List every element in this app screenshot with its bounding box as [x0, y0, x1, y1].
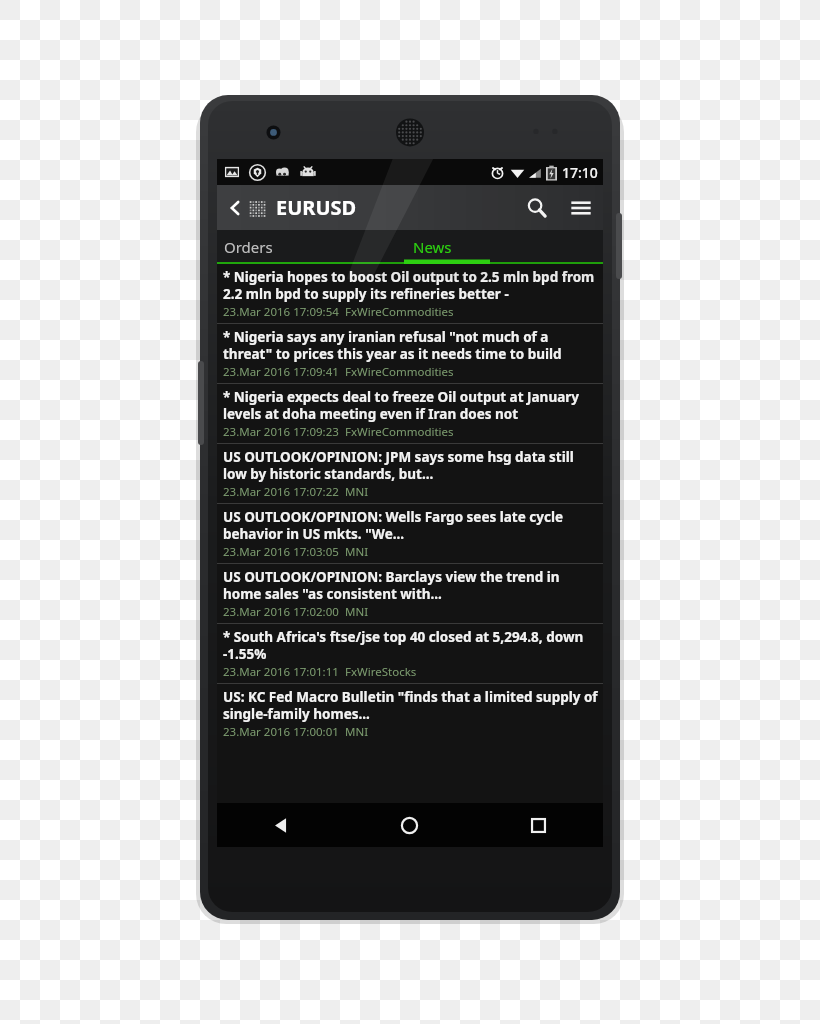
staticText: 23.Mar 2016 17:00:01 [223, 724, 339, 740]
button[interactable]: * South Africa's ftse/jse top 40 closed … [217, 624, 603, 683]
staticText: * South Africa's ftse/jse top 40 closed … [223, 628, 598, 663]
button[interactable]: * Nigeria hopes to boost Oil output to 2… [217, 264, 603, 323]
staticText: US OUTLOOK/OPINION: Barclays view the tr… [223, 568, 598, 603]
button[interactable]: Recents [474, 803, 603, 847]
button[interactable]: * Nigeria says any iranian refusal "not … [217, 324, 603, 383]
staticText: 23.Mar 2016 17:03:05 [223, 544, 339, 560]
staticText: MNI [345, 484, 369, 500]
staticText: * Nigeria hopes to boost Oil output to 2… [223, 268, 598, 303]
button[interactable]: Orders [217, 230, 410, 264]
staticText: EURUSD [276, 194, 357, 221]
staticText: * Nigeria says any iranian refusal "not … [223, 328, 598, 363]
staticText: 23.Mar 2016 17:09:41 [223, 364, 339, 380]
staticText: FxWireCommodities [345, 424, 454, 440]
button[interactable]: News [410, 230, 603, 264]
staticText: MNI [345, 544, 369, 560]
button[interactable]: US: KC Fed Macro Bulletin "finds that a … [217, 684, 603, 743]
staticText: FxWireStocks [345, 664, 417, 680]
button[interactable]: US OUTLOOK/OPINION: Wells Fargo sees lat… [217, 504, 603, 563]
button[interactable]: Home [345, 803, 474, 847]
staticText: US OUTLOOK/OPINION: Wells Fargo sees lat… [223, 508, 598, 543]
other: Back [225, 198, 245, 218]
staticText: MNI [345, 604, 369, 620]
staticText: 23.Mar 2016 17:07:22 [223, 484, 339, 500]
staticText: MNI [345, 724, 369, 740]
button[interactable]: Back [222, 190, 360, 225]
button[interactable]: Back [217, 803, 345, 847]
staticText: * Nigeria expects deal to freeze Oil out… [223, 388, 598, 423]
staticText: US: KC Fed Macro Bulletin "finds that a … [223, 688, 598, 723]
button[interactable]: US OUTLOOK/OPINION: JPM says some hsg da… [217, 444, 603, 503]
button[interactable]: US OUTLOOK/OPINION: Barclays view the tr… [217, 564, 603, 623]
staticText: Orders [224, 237, 273, 257]
staticText: FxWireCommodities [345, 304, 454, 320]
staticText: 23.Mar 2016 17:09:54 [223, 304, 339, 320]
button[interactable]: Search [515, 186, 559, 230]
button[interactable]: Menu [559, 186, 603, 230]
staticText: US OUTLOOK/OPINION: JPM says some hsg da… [223, 448, 598, 483]
staticText: 23.Mar 2016 17:01:11 [223, 664, 339, 680]
staticText: 23.Mar 2016 17:02:00 [223, 604, 339, 620]
button[interactable]: * Nigeria expects deal to freeze Oil out… [217, 384, 603, 443]
staticText: 23.Mar 2016 17:09:23 [223, 424, 339, 440]
staticText: FxWireCommodities [345, 364, 454, 380]
staticText: News [413, 237, 452, 257]
staticText: 17:10 [562, 163, 598, 182]
